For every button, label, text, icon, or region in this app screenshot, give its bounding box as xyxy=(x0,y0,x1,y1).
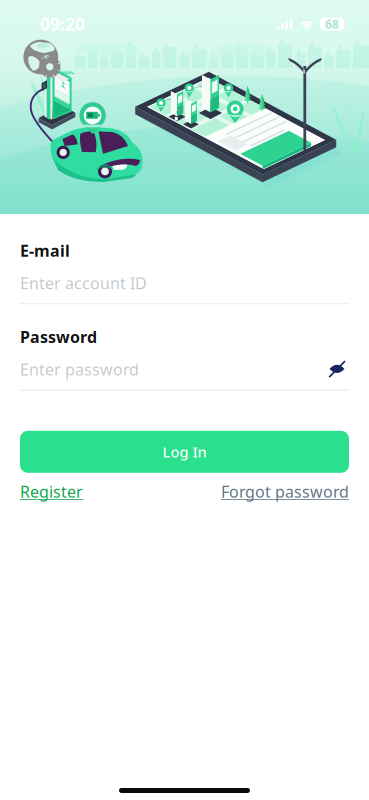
staticText: Enter password xyxy=(20,359,139,380)
staticText: Password xyxy=(20,326,97,347)
staticText: E-mail xyxy=(20,240,70,261)
staticText: Enter account ID xyxy=(20,272,147,294)
staticText: Forgot password xyxy=(221,481,349,502)
staticText: Register xyxy=(20,481,83,502)
button[interactable]: Register xyxy=(20,481,83,502)
button[interactable]: Show password xyxy=(326,358,349,381)
staticText: 09:20 xyxy=(40,12,85,35)
staticText: 68 xyxy=(325,16,339,32)
button[interactable]: Log In xyxy=(20,431,349,473)
staticText: Log In xyxy=(162,442,206,462)
button[interactable]: Forgot password xyxy=(221,481,349,502)
